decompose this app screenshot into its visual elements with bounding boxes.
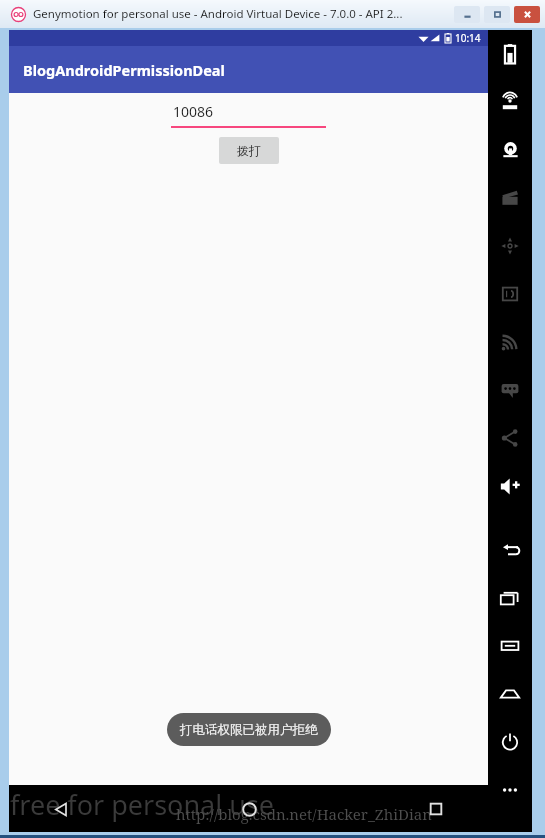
button[interactable]: Recent apps [494,582,526,614]
button[interactable]: Volume up [494,470,526,502]
button[interactable]: Identifiers [494,278,526,310]
staticText: 打电话权限已被用户拒绝 [180,722,318,738]
button[interactable]: Accelerometer [494,230,526,262]
button[interactable]: Back [494,534,526,566]
staticText: 10:14 [455,31,481,45]
button[interactable]: Back [39,787,83,831]
button[interactable]: 10086 [171,102,326,128]
button[interactable]: Home [227,787,271,831]
button[interactable]: More options [494,774,526,806]
button[interactable]: Share [494,422,526,454]
staticText: 拨打 [237,143,261,158]
button[interactable]: Network [494,326,526,358]
button[interactable]: Messages [494,374,526,406]
button[interactable]: Home [494,678,526,710]
staticText: http://blog.csdn.net/Hacker_ZhiDian [176,804,432,824]
button[interactable]: Power [494,726,526,758]
staticText: BlogAndroidPermissionDeal [23,60,225,80]
button[interactable]: GPS [494,86,526,118]
staticText: free for personal use [10,786,275,823]
button[interactable]: Recent apps [414,787,458,831]
button[interactable]: Battery [494,38,526,70]
staticText: 10086 [173,102,214,121]
button[interactable]: Close [514,6,540,23]
staticText: Genymotion for personal use - Android Vi… [33,6,403,22]
button[interactable]: Menu [494,630,526,662]
button[interactable]: Minimize [454,6,480,23]
button[interactable]: Camera [494,134,526,166]
button[interactable]: 拨打 [219,137,279,164]
button[interactable]: Video recording [494,182,526,214]
button[interactable]: Maximize [484,6,510,23]
